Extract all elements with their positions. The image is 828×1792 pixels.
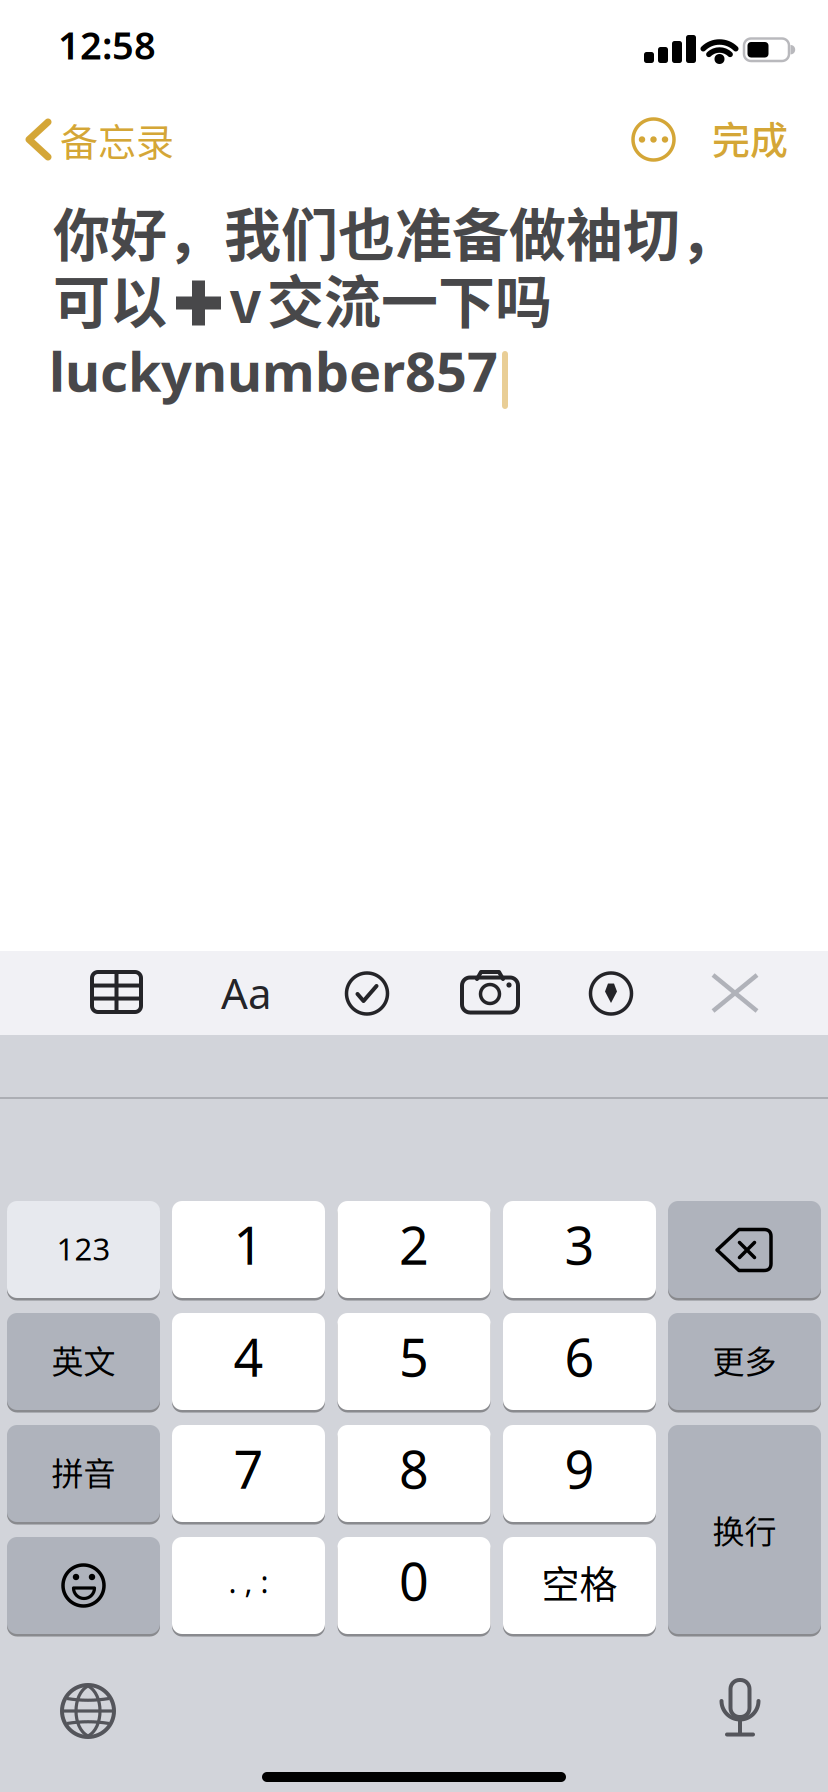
button[interactable]: 表情 — [0, 0, 153, 97]
button[interactable]: 表格 — [0, 0, 828, 1792]
button[interactable]: 8 — [0, 0, 153, 97]
staticText: 备忘录 — [60, 112, 174, 167]
staticText: v — [229, 257, 262, 339]
staticText: 1 — [233, 1209, 263, 1280]
button[interactable]: 核对清单 — [0, 0, 828, 1792]
staticText: luckynumber857 — [49, 334, 498, 407]
button[interactable]: 5 — [0, 0, 153, 97]
staticText: 英文 — [51, 1336, 115, 1383]
button[interactable]: 删除 — [0, 0, 153, 97]
staticText: 0 — [399, 1545, 429, 1616]
button[interactable]: 完成 — [0, 0, 76, 55]
button[interactable]: 4 — [0, 0, 153, 97]
staticText: . , : — [228, 1561, 268, 1602]
button[interactable]: 7 — [0, 0, 153, 97]
button[interactable]: 空格 — [0, 0, 153, 97]
staticText: 空格 — [541, 1554, 617, 1609]
button[interactable]: 3 — [0, 0, 153, 97]
staticText: 换行 — [712, 1506, 776, 1553]
button[interactable]: 123 — [0, 0, 153, 97]
button[interactable]: 标记 — [0, 0, 828, 1792]
button[interactable]: 照片 — [0, 0, 828, 1792]
button[interactable]: 6 — [0, 0, 153, 97]
button[interactable]: 英文 — [0, 0, 153, 97]
button[interactable]: 关闭 — [0, 0, 828, 1792]
button[interactable]: 1 — [0, 0, 153, 97]
staticText: 7 — [233, 1433, 263, 1504]
button[interactable]: 2 — [0, 0, 153, 97]
button[interactable]: 听写 — [0, 0, 828, 1792]
staticText: 123 — [56, 1227, 110, 1270]
staticText: 4 — [233, 1321, 263, 1392]
staticText: Aa — [221, 964, 272, 1021]
button[interactable]: 拼音 — [0, 0, 153, 97]
staticText: 可以 — [53, 257, 167, 339]
staticText: 3 — [564, 1209, 594, 1280]
button[interactable]: 换行 — [0, 0, 153, 209]
staticText: 拼音 — [51, 1448, 115, 1495]
button[interactable]: 0 — [0, 0, 153, 97]
staticText: 9 — [564, 1433, 594, 1504]
staticText: 你好，我们也准备做袖切， — [53, 190, 737, 272]
button[interactable]: 下一个键盘 — [0, 0, 828, 1792]
button[interactable]: 备忘录 — [0, 0, 828, 1792]
staticText: 12:58 — [58, 19, 156, 71]
staticText: 完成 — [712, 110, 788, 165]
staticText: 6 — [564, 1321, 594, 1392]
button[interactable]: 更多 — [0, 0, 153, 97]
button[interactable]: . , : — [0, 0, 153, 97]
staticText: 交流一下吗 — [267, 257, 552, 339]
button[interactable]: 更多 — [0, 0, 828, 1792]
staticText: 2 — [399, 1209, 429, 1280]
button[interactable]: 9 — [0, 0, 153, 97]
staticText: 8 — [399, 1433, 429, 1504]
staticText: 5 — [399, 1321, 429, 1392]
staticText: 更多 — [712, 1336, 776, 1383]
